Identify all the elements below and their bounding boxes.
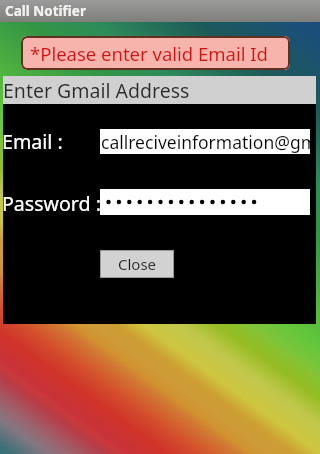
staticText: Email : [2,128,63,155]
button[interactable]: Password [100,189,310,215]
staticText: Close [118,254,157,274]
staticText: callreciveinformation@gmail.com [101,130,310,154]
staticText: *Please enter valid Email Id [30,41,268,66]
staticText: Call Notifier [5,2,86,20]
staticText: Password : [2,190,101,217]
button[interactable]: callreciveinformation@gmail.com [100,129,310,154]
button[interactable]: *Please enter valid Email Id [21,36,290,70]
staticText: Enter Gmail Address [3,77,190,104]
button[interactable]: Close [100,250,174,278]
